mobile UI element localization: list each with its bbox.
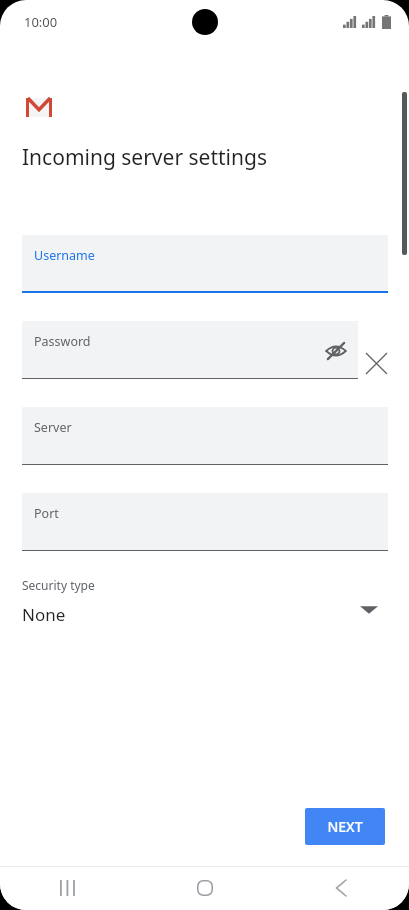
button[interactable]: Security type xyxy=(0,570,409,636)
staticText: NEXT xyxy=(327,817,363,836)
button[interactable]: Username xyxy=(22,235,388,293)
staticText: None xyxy=(22,603,66,626)
button[interactable]: Show password xyxy=(318,333,354,369)
button[interactable]: Back xyxy=(273,866,409,910)
button[interactable]: Password xyxy=(22,321,358,379)
staticText: Username xyxy=(34,247,95,264)
button[interactable]: Home xyxy=(137,866,273,910)
button[interactable]: Clear xyxy=(358,345,394,381)
button[interactable]: NEXT xyxy=(305,808,385,845)
staticText: Incoming server settings xyxy=(22,143,267,172)
staticText: Security type xyxy=(22,577,95,593)
button[interactable]: Port xyxy=(22,493,388,551)
staticText: 10:00 xyxy=(24,13,58,31)
button[interactable]: Recent apps xyxy=(0,866,137,910)
staticText: Password xyxy=(34,333,91,350)
staticText: Port xyxy=(34,505,59,522)
staticText: Server xyxy=(34,419,72,436)
button[interactable]: Server xyxy=(22,407,388,465)
